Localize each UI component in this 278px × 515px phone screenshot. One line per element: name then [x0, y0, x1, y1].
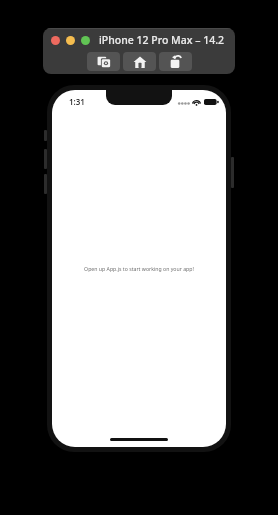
- staticText: iPhone 12 Pro Max – 14.2: [99, 33, 225, 47]
- button[interactable]: Minimise: [66, 36, 75, 45]
- button[interactable]: Screenshot: [87, 52, 120, 71]
- button[interactable]: Rotate: [159, 52, 192, 71]
- button[interactable]: Close: [51, 36, 60, 45]
- button[interactable]: Zoom: [81, 36, 90, 45]
- button[interactable]: Home: [123, 52, 156, 71]
- staticText: 1:31: [69, 96, 85, 107]
- staticText: Open up App.js to start working on your …: [84, 265, 194, 272]
